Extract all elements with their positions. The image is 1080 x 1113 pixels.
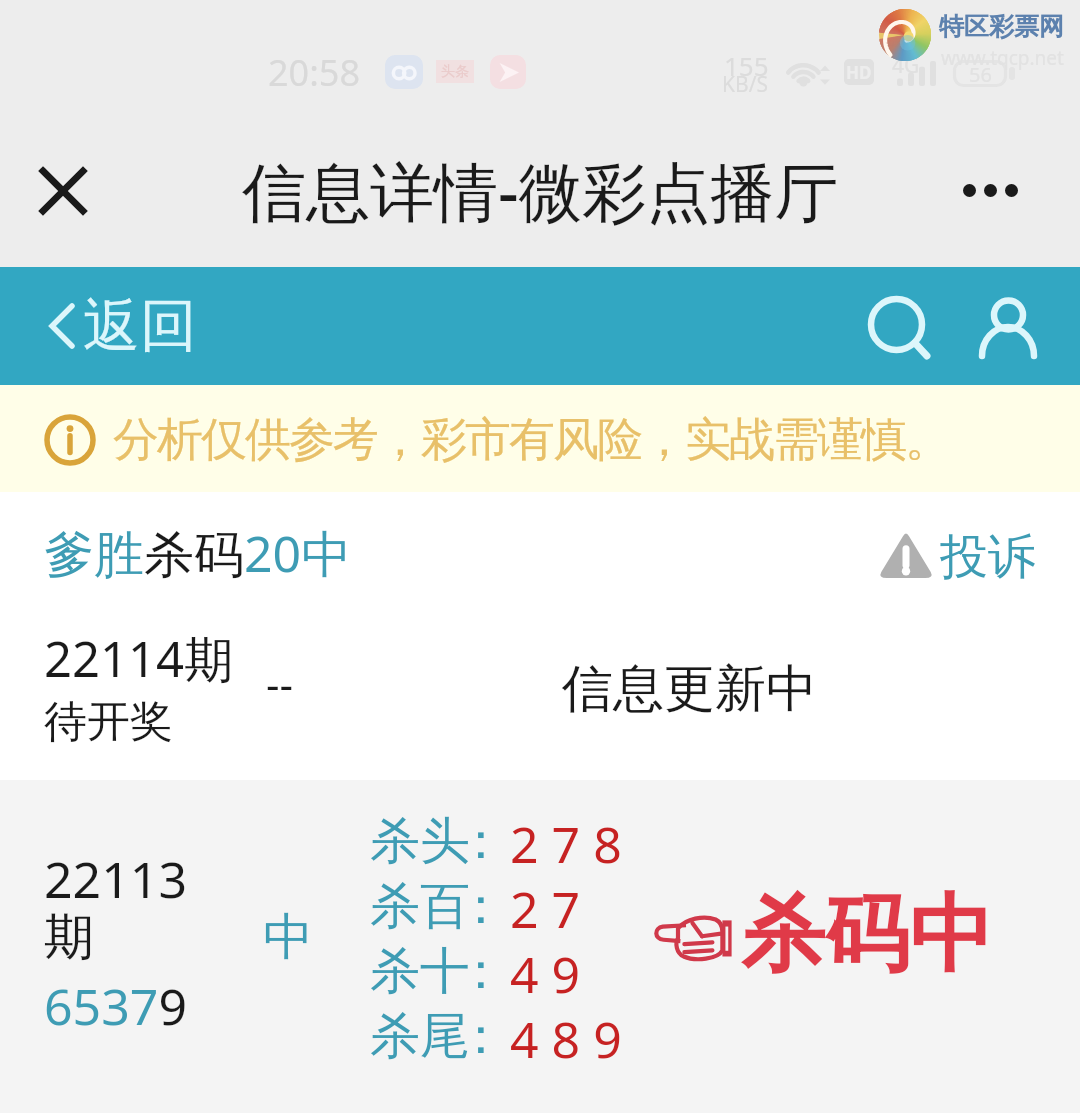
staticText: 期 xyxy=(44,906,94,969)
staticText: ： xyxy=(456,875,506,938)
button[interactable]: 返回 xyxy=(30,277,197,375)
staticText: 杀尾 xyxy=(370,1005,470,1068)
staticText: 22113 xyxy=(44,845,187,913)
staticText: ： xyxy=(456,940,506,1003)
staticText: 4G xyxy=(892,51,920,80)
button[interactable]: More options xyxy=(940,145,1040,235)
button[interactable]: Close xyxy=(18,146,108,236)
staticText: ： xyxy=(456,1005,506,1068)
staticText: 20:58 xyxy=(268,48,361,97)
staticText: ： xyxy=(456,810,506,873)
staticText: 爹胜杀码20中 xyxy=(44,519,352,587)
staticText: 22114期 xyxy=(44,625,234,692)
staticText: 杀十 xyxy=(370,940,470,1003)
staticText: 65379 xyxy=(44,972,187,1040)
staticText: 4 8 9 xyxy=(510,1005,622,1073)
staticText: 分析仅供参考，彩市有风险，实战需谨慎。 xyxy=(114,411,950,469)
staticText: www.tqcp.net xyxy=(941,45,1064,71)
button[interactable]: Account xyxy=(948,270,1040,362)
staticText: HD xyxy=(846,61,872,84)
staticText: 返回 xyxy=(83,290,197,362)
button[interactable] xyxy=(0,492,1080,780)
staticText: 155 xyxy=(724,48,769,83)
staticText: 信息详情-微彩点播厅 xyxy=(242,147,839,234)
staticText: 杀头 xyxy=(370,810,470,873)
staticText: 杀码中 xyxy=(741,882,993,988)
staticText: 信息更新中 xyxy=(562,657,817,721)
staticText: 杀百 xyxy=(370,875,470,938)
button[interactable]: Search xyxy=(837,268,929,360)
staticText: KB/S xyxy=(722,70,768,99)
staticText: 56 xyxy=(969,61,992,86)
staticText: 4 9 xyxy=(510,940,581,1008)
staticText: 2 7 xyxy=(510,875,581,943)
staticText: 投诉 xyxy=(940,527,1036,587)
button[interactable]: 投诉 xyxy=(878,515,1036,593)
staticText: 中 xyxy=(263,906,313,969)
button[interactable] xyxy=(0,780,1080,1113)
staticText: -- xyxy=(266,655,294,712)
staticText: 待开奖 xyxy=(44,695,173,749)
staticText: 2 7 8 xyxy=(510,810,622,878)
staticText: 特区彩票网 xyxy=(939,11,1064,42)
staticText: 头条 xyxy=(441,63,469,81)
